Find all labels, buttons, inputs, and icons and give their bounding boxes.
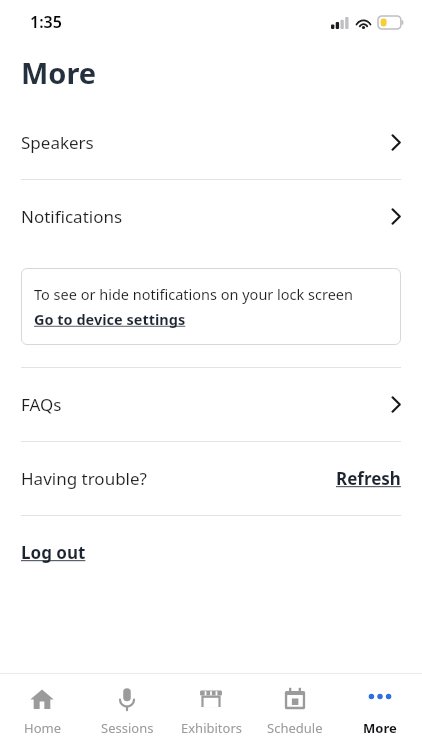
button[interactable]: To see or hide notifications on your loc… bbox=[21, 268, 401, 345]
button[interactable]: Log out bbox=[0, 516, 422, 588]
button[interactable]: Refresh bbox=[336, 467, 401, 490]
staticText: Exhibitors bbox=[181, 719, 242, 737]
button[interactable]: Speakers bbox=[0, 106, 422, 179]
staticText: To see or hide notifications on your loc… bbox=[34, 284, 354, 304]
button[interactable]: Exhibitors bbox=[169, 674, 253, 737]
staticText: Sessions bbox=[101, 719, 154, 737]
staticText: 1:35 bbox=[30, 11, 62, 33]
staticText: Having trouble? bbox=[21, 467, 147, 490]
staticText: FAQs bbox=[21, 393, 62, 416]
button[interactable]: Home bbox=[0, 674, 84, 737]
button[interactable]: FAQs bbox=[0, 368, 422, 441]
button[interactable]: More bbox=[338, 674, 422, 737]
staticText: More bbox=[363, 719, 397, 737]
staticText: Speakers bbox=[21, 131, 94, 154]
staticText: Schedule bbox=[267, 719, 323, 737]
button[interactable]: Schedule bbox=[253, 674, 337, 737]
button[interactable]: Notifications bbox=[0, 180, 422, 253]
staticText: Go to device settings bbox=[34, 309, 186, 329]
staticText: Notifications bbox=[21, 205, 123, 228]
staticText: Log out bbox=[21, 541, 86, 564]
staticText: More bbox=[21, 53, 97, 92]
staticText: Home bbox=[24, 719, 61, 737]
staticText: Refresh bbox=[336, 467, 401, 490]
button[interactable]: Sessions bbox=[85, 674, 169, 737]
